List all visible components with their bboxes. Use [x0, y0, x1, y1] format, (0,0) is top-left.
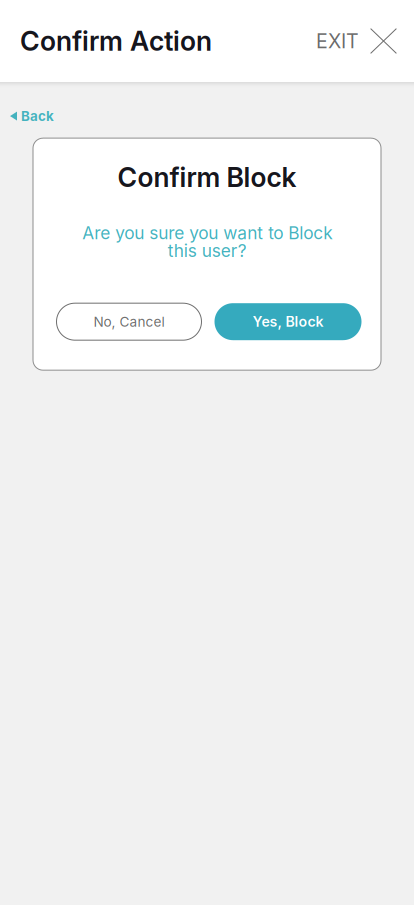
- button[interactable]: Yes, Block: [214, 303, 361, 340]
- staticText: Back: [21, 108, 54, 124]
- button[interactable]: Back: [0, 97, 70, 135]
- staticText: No, Cancel: [93, 313, 164, 330]
- staticText: Confirm Block: [117, 161, 296, 193]
- staticText: Confirm Action: [20, 25, 212, 57]
- button[interactable]: No, Cancel: [56, 303, 201, 340]
- staticText: EXIT: [316, 29, 359, 53]
- button[interactable]: Exit: [316, 28, 397, 54]
- staticText: Are you sure you want to Block this user…: [82, 222, 332, 261]
- staticText: Yes, Block: [252, 313, 323, 330]
